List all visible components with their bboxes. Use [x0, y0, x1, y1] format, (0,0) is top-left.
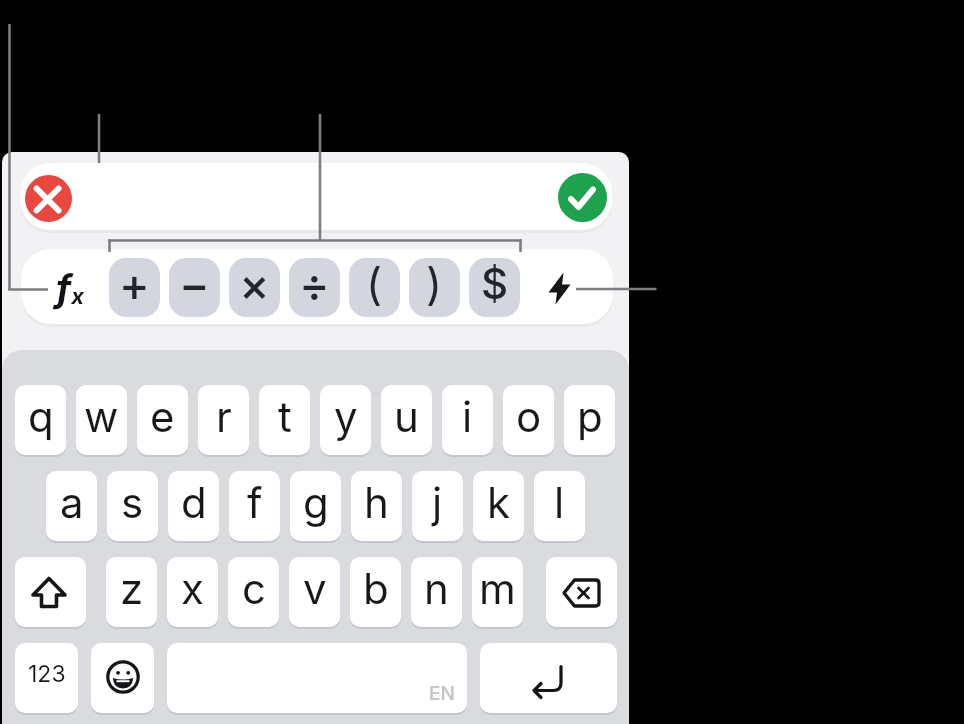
button[interactable]: EN	[167, 643, 467, 713]
staticText: w	[84, 391, 119, 442]
button[interactable]	[546, 557, 617, 627]
button[interactable]: p	[564, 385, 615, 455]
staticText: t	[278, 391, 292, 442]
staticText: e	[150, 391, 175, 442]
button[interactable]: c	[228, 557, 279, 627]
staticText: fx	[56, 265, 84, 310]
staticText: −	[179, 258, 210, 312]
button[interactable]: w	[76, 385, 127, 455]
button[interactable]: q	[15, 385, 66, 455]
staticText: j	[432, 477, 443, 528]
button[interactable]: )	[409, 258, 460, 317]
staticText: 123	[28, 660, 66, 688]
staticText: m	[479, 563, 516, 614]
button[interactable]: s	[107, 471, 158, 541]
staticText: q	[28, 391, 54, 442]
staticText: z	[120, 563, 144, 614]
staticText: p	[577, 391, 603, 442]
button[interactable]: 123	[15, 643, 78, 713]
staticText: ÷	[299, 258, 330, 312]
button[interactable]: y	[320, 385, 371, 455]
staticText: (	[366, 258, 383, 310]
button[interactable]: r	[198, 385, 249, 455]
staticText: c	[242, 563, 266, 614]
staticText: l	[554, 477, 565, 528]
button[interactable]: d	[168, 471, 219, 541]
button[interactable]: i	[442, 385, 493, 455]
button[interactable]: u	[381, 385, 432, 455]
button[interactable]: h	[351, 471, 402, 541]
staticText: y	[334, 391, 358, 442]
button[interactable]: g	[290, 471, 341, 541]
button[interactable]: fx	[41, 257, 99, 317]
staticText: o	[516, 391, 542, 442]
button[interactable]: l	[534, 471, 585, 541]
staticText: v	[303, 563, 327, 614]
staticText: +	[119, 258, 150, 312]
button[interactable]: b	[350, 557, 401, 627]
button[interactable]: k	[473, 471, 524, 541]
button[interactable]: e	[137, 385, 188, 455]
button[interactable]	[15, 557, 86, 627]
staticText: EN	[429, 682, 455, 705]
staticText: n	[424, 563, 449, 614]
staticText: ×	[239, 258, 270, 312]
button[interactable]: a	[46, 471, 97, 541]
staticText: $	[481, 258, 509, 309]
button[interactable]: ×	[229, 258, 280, 317]
button[interactable]	[480, 643, 617, 713]
staticText: )	[426, 258, 443, 310]
button[interactable]: $	[469, 258, 520, 317]
button[interactable]: m	[472, 557, 523, 627]
button[interactable]: f	[229, 471, 280, 541]
button[interactable]	[91, 643, 154, 713]
staticText: f	[247, 477, 263, 528]
button[interactable]: z	[106, 557, 157, 627]
button[interactable]: −	[169, 258, 220, 317]
button[interactable]: +	[109, 258, 160, 317]
staticText: s	[121, 477, 144, 528]
button[interactable]: o	[503, 385, 554, 455]
button[interactable]: t	[259, 385, 310, 455]
staticText: x	[181, 563, 204, 614]
button[interactable]: (	[349, 258, 400, 317]
button[interactable]	[541, 257, 591, 317]
button[interactable]: j	[412, 471, 463, 541]
button[interactable]: n	[411, 557, 462, 627]
staticText: b	[363, 563, 389, 614]
button[interactable]: v	[289, 557, 340, 627]
staticText: i	[462, 391, 473, 442]
staticText: d	[181, 477, 207, 528]
staticText: r	[216, 391, 232, 442]
staticText: u	[394, 391, 419, 442]
staticText: k	[487, 477, 511, 528]
button[interactable]	[25, 175, 72, 222]
button[interactable]: x	[167, 557, 218, 627]
staticText: a	[60, 477, 84, 528]
button[interactable]	[558, 173, 607, 222]
staticText: h	[364, 477, 389, 528]
button[interactable]: ÷	[289, 258, 340, 317]
staticText: g	[303, 477, 329, 528]
